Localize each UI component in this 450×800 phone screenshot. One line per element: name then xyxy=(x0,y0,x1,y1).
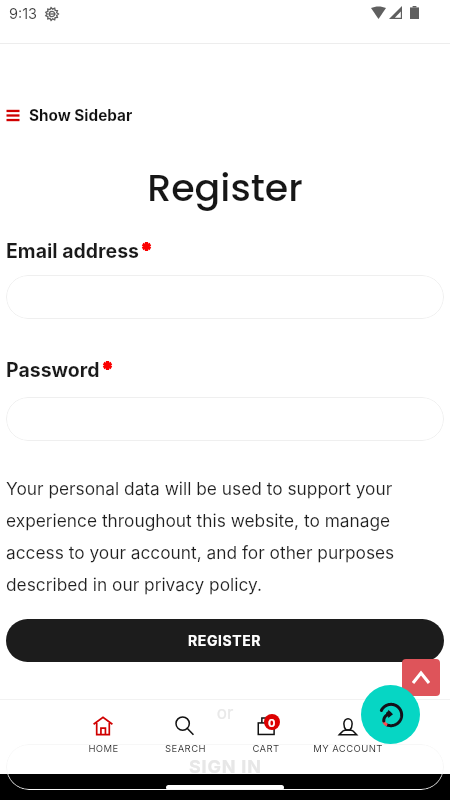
staticText: MY ACCOUNT xyxy=(313,743,383,754)
button[interactable] xyxy=(6,275,444,319)
staticText: SIGN IN xyxy=(189,756,262,778)
staticText: Your personal data will be used to suppo… xyxy=(6,478,400,595)
staticText: CART xyxy=(252,743,280,754)
button[interactable]: REGISTER xyxy=(6,619,444,662)
staticText: Register xyxy=(0,161,450,214)
button[interactable]: SEARCH xyxy=(145,699,225,754)
button[interactable]: Scroll to top xyxy=(402,659,440,696)
staticText: HOME xyxy=(88,743,119,754)
button[interactable]: Chat assistant xyxy=(361,685,420,744)
button[interactable]: SIGN IN xyxy=(6,744,444,790)
staticText: Show Sidebar xyxy=(29,106,133,125)
button[interactable]: 0 xyxy=(226,699,306,754)
button[interactable] xyxy=(6,397,444,441)
button[interactable]: HOME xyxy=(63,699,143,754)
staticText: SEARCH xyxy=(165,743,206,754)
staticText: 0 xyxy=(268,716,276,729)
button[interactable]: Show Sidebar xyxy=(0,103,141,128)
staticText: Email address xyxy=(6,239,139,263)
staticText: REGISTER xyxy=(188,632,262,649)
staticText: 9:13 xyxy=(9,5,38,23)
button[interactable]: MY ACCOUNT xyxy=(308,699,388,754)
staticText: or xyxy=(0,703,450,724)
staticText: Password xyxy=(6,358,100,382)
